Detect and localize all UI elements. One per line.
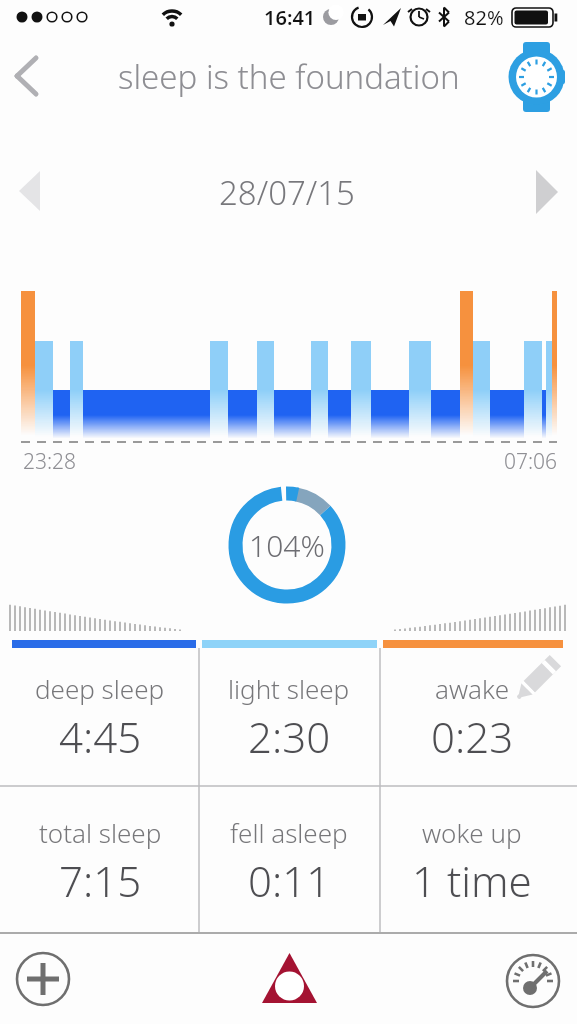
staticText: 07:06 <box>504 447 558 475</box>
button[interactable] <box>258 948 321 1008</box>
button[interactable] <box>14 950 72 1008</box>
staticText: total sleep <box>39 815 162 850</box>
button[interactable] <box>6 48 58 104</box>
staticText: 0:11 <box>248 852 331 904</box>
button[interactable] <box>508 38 568 116</box>
staticText: 1 time <box>412 852 532 904</box>
staticText: 7:15 <box>59 852 142 904</box>
staticText: 104% <box>249 525 325 566</box>
staticText: woke up <box>422 815 522 850</box>
staticText: fell asleep <box>230 815 348 850</box>
staticText: light sleep <box>228 671 350 706</box>
button[interactable] <box>524 160 570 222</box>
staticText: 2:30 <box>248 708 331 760</box>
staticText: 4:45 <box>59 708 142 760</box>
staticText: awake <box>435 671 510 706</box>
staticText: 28/07/15 <box>219 170 355 215</box>
button[interactable] <box>8 160 58 222</box>
staticText: sleep is the foundation <box>118 54 460 99</box>
button[interactable] <box>504 952 562 1010</box>
staticText: 23:28 <box>23 447 77 475</box>
staticText: 82% <box>464 4 504 31</box>
staticText: deep sleep <box>35 671 165 706</box>
staticText: 16:41 <box>264 4 316 31</box>
button[interactable] <box>380 648 577 786</box>
staticText: 0:23 <box>431 708 514 760</box>
